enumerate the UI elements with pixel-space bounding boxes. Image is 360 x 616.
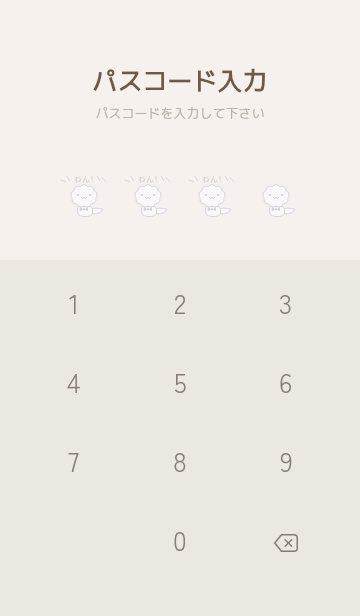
button[interactable]: 6 (233, 342, 339, 421)
staticText: 3 (279, 283, 293, 322)
button[interactable]: 9 (233, 421, 339, 500)
staticText: 9 (280, 441, 293, 480)
staticText: 0 (173, 520, 187, 559)
staticText: 1 (69, 283, 80, 322)
staticText: わん! (202, 174, 223, 184)
staticText: 7 (68, 441, 80, 480)
staticText: パスコード入力 (92, 63, 268, 98)
button[interactable]: 1 (21, 263, 127, 342)
button[interactable]: 8 (127, 421, 233, 500)
staticText: 2 (174, 283, 187, 322)
staticText: パスコードを入力して下さい (95, 104, 265, 122)
staticText: 4 (67, 362, 81, 401)
staticText: 5 (174, 362, 187, 401)
button[interactable]: 2 (127, 263, 233, 342)
button[interactable]: 0 (127, 500, 233, 579)
staticText: 6 (279, 362, 293, 401)
staticText: わん! (138, 174, 159, 184)
button[interactable]: 5 (127, 342, 233, 421)
button[interactable]: Backspace (233, 500, 339, 579)
staticText: わん! (74, 174, 95, 184)
button[interactable]: 4 (21, 342, 127, 421)
staticText: 8 (173, 441, 187, 480)
button[interactable]: 3 (233, 263, 339, 342)
button[interactable]: 7 (21, 421, 127, 500)
